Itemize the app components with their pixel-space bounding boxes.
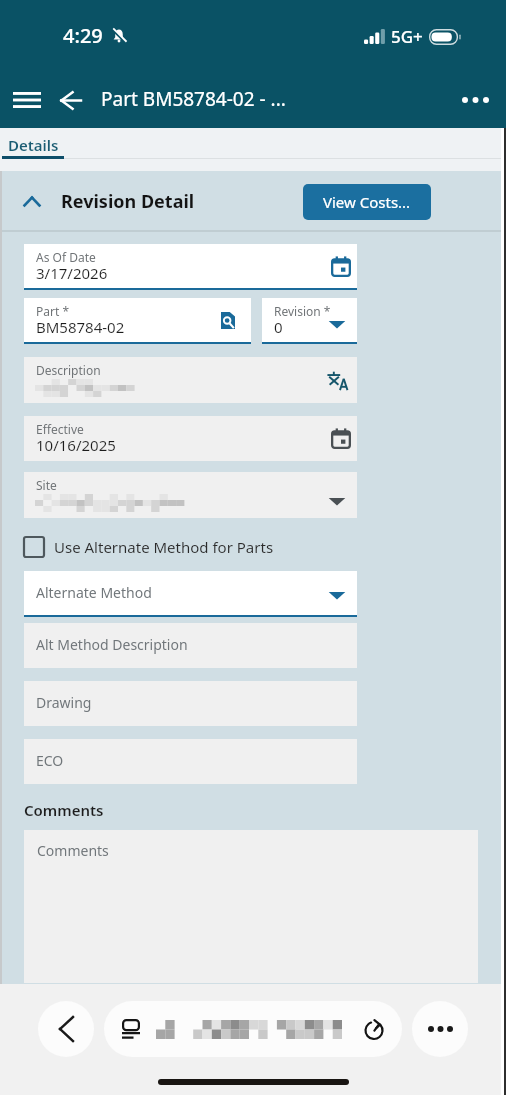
staticText: Comments xyxy=(37,841,109,860)
staticText: ECO xyxy=(36,751,64,770)
staticText: 5G+ xyxy=(391,25,423,48)
button[interactable]: As Of Date xyxy=(24,244,357,288)
button[interactable]: Use Alternate Method for Parts xyxy=(24,533,274,560)
button[interactable]: Drawing xyxy=(24,681,357,726)
button[interactable]: Site xyxy=(24,472,357,518)
staticText: Details xyxy=(8,135,59,155)
button[interactable]: Menu xyxy=(7,80,47,120)
button[interactable]: Comments xyxy=(24,830,478,983)
staticText: Part BM58784-02 - ... xyxy=(101,86,286,112)
staticText: As Of Date xyxy=(36,249,96,265)
button[interactable]: Effective xyxy=(24,416,357,461)
button[interactable]: Part * xyxy=(24,298,251,342)
button[interactable]: Alt Method Description xyxy=(24,623,357,668)
button[interactable]: View Costs... xyxy=(303,184,431,220)
staticText: Part * xyxy=(36,303,70,319)
button[interactable]: Refresh xyxy=(104,1001,402,1057)
staticText: Alternate Method xyxy=(36,583,152,602)
button[interactable]: Back xyxy=(50,80,90,120)
button[interactable]: Revision * xyxy=(262,298,357,342)
staticText: Revision Detail xyxy=(61,189,195,214)
button[interactable]: Alternate Method xyxy=(24,571,357,615)
staticText: Revision * xyxy=(274,303,331,319)
staticText: Site xyxy=(36,477,57,493)
staticText: 10/16/2025 xyxy=(36,435,116,455)
staticText: Drawing xyxy=(36,693,92,712)
staticText: Use Alternate Method for Parts xyxy=(54,537,274,557)
staticText: Comments xyxy=(24,800,104,820)
button[interactable]: Refresh xyxy=(356,1011,392,1047)
staticText: 3/17/2026 xyxy=(36,263,108,283)
staticText: BM58784-02 xyxy=(36,317,125,337)
button[interactable]: More xyxy=(412,1001,468,1057)
staticText: Effective xyxy=(36,421,84,437)
button[interactable]: Revision Detail xyxy=(0,171,506,230)
staticText: 4:29 xyxy=(63,22,103,49)
button[interactable]: Details xyxy=(0,128,64,161)
staticText: Alt Method Description xyxy=(36,635,188,654)
button[interactable]: Description xyxy=(24,357,357,403)
staticText: 0 xyxy=(274,317,283,337)
staticText: Description xyxy=(36,362,101,378)
button[interactable]: More options xyxy=(452,77,498,123)
staticText: View Costs... xyxy=(323,192,411,212)
button[interactable]: Back xyxy=(38,1001,94,1057)
button[interactable]: ECO xyxy=(24,739,357,784)
